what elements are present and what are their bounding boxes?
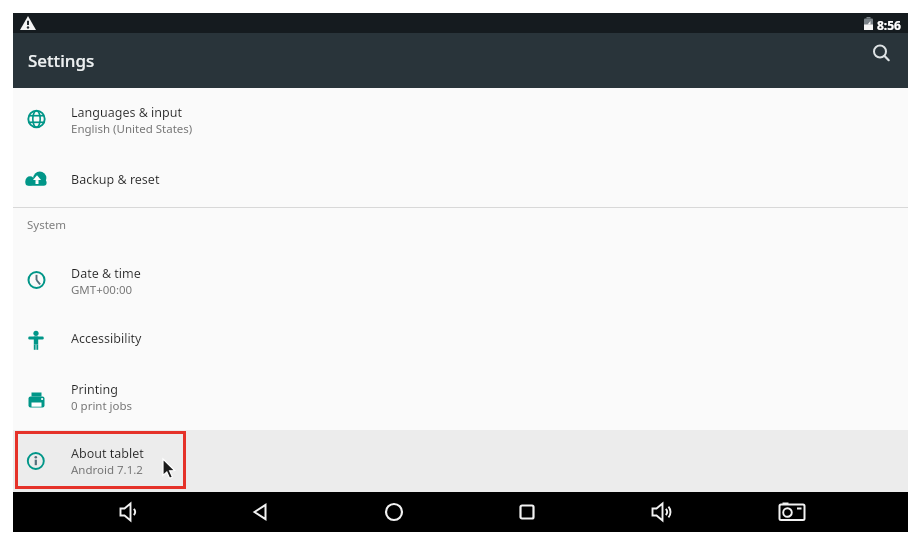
button[interactable] [638,492,682,532]
button[interactable]: Date & time [13,250,908,312]
staticText: 0 print jobs [71,398,133,414]
button[interactable] [770,492,814,532]
button[interactable] [505,492,549,532]
button[interactable]: About tablet [13,430,908,492]
staticText: Backup & reset [71,171,160,188]
staticText: System [27,217,67,233]
button[interactable] [106,492,150,532]
button[interactable]: Languages & input [13,88,908,152]
button[interactable] [239,492,283,532]
staticText: About tablet [71,445,144,462]
button[interactable] [862,53,900,88]
staticText: Printing [71,381,118,398]
button[interactable]: Accessibility [13,312,908,365]
staticText: Date & time [71,265,141,282]
button[interactable] [372,492,416,532]
staticText: Android 7.1.2 [71,462,143,478]
staticText: English (United States) [71,121,193,137]
staticText: 8:56 [877,17,901,33]
staticText: Settings [28,49,95,72]
button[interactable]: Printing [13,365,908,430]
staticText: Languages & input [71,104,182,121]
button[interactable]: Backup & reset [13,152,908,207]
staticText: Accessibility [71,330,142,347]
staticText: GMT+00:00 [71,282,133,298]
